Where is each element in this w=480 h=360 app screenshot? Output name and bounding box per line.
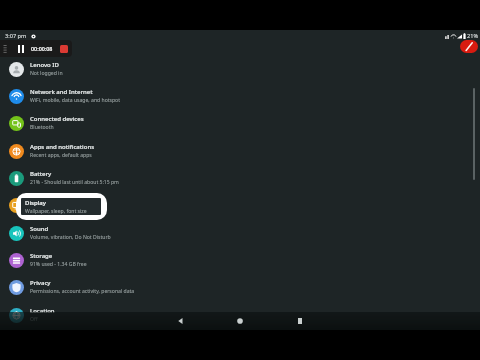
staticText: Display [30, 197, 51, 205]
staticText: Connected devices [30, 115, 84, 123]
button[interactable]: Back [150, 312, 210, 330]
staticText: 91% used - 1.34 GB free [30, 261, 87, 268]
staticText: WiFi, mobile, data usage, and hotspot [30, 97, 121, 104]
staticText: Bluetooth [30, 124, 54, 131]
staticText: Sound [30, 225, 49, 233]
staticText: Off [30, 316, 38, 323]
button[interactable]: Battery [0, 165, 480, 191]
button[interactable]: Display [0, 192, 480, 218]
button[interactable]: Pause recording [16, 44, 26, 54]
staticText: Recent apps, default apps [30, 152, 92, 159]
button[interactable]: Home [210, 312, 270, 330]
staticText: Wallpaper, sleep, font size [25, 208, 87, 215]
staticText: 3:07 pm [5, 32, 27, 40]
staticText: Location [30, 307, 55, 315]
button[interactable]: Privacy [0, 274, 480, 300]
button[interactable]: Network and Internet [0, 83, 480, 109]
staticText: Privacy [30, 279, 51, 287]
button[interactable]: Display [21, 198, 101, 215]
button[interactable]: Recent apps [270, 312, 330, 330]
staticText: Volume, vibration, Do Not Disturb [30, 234, 111, 241]
staticText: 21% - Should last until about 5:15 pm [30, 179, 119, 186]
button[interactable]: Sound [0, 220, 480, 246]
staticText: Not logged in [30, 70, 63, 77]
button[interactable]: Location [0, 302, 480, 328]
button[interactable]: Lenovo ID [0, 56, 480, 82]
staticText: Storage [30, 252, 53, 260]
staticText: 00:00:08 [31, 45, 53, 52]
button[interactable]: Microphone off [460, 40, 478, 53]
staticText: Apps and notifications [30, 143, 95, 151]
staticText: Permissions, account activity, personal … [30, 288, 135, 295]
button[interactable]: Stop recording [60, 45, 68, 53]
staticText: Network and Internet [30, 88, 93, 96]
staticText: 21% [467, 32, 479, 40]
staticText: Battery [30, 170, 52, 178]
button[interactable]: Apps and notifications [0, 138, 480, 164]
staticText: Wallpaper, sleep, font size [30, 206, 92, 213]
other: Drag handle [2, 44, 8, 54]
button[interactable]: Connected devices [0, 110, 480, 136]
button[interactable]: Storage [0, 247, 480, 273]
staticText: Display [25, 199, 46, 207]
staticText: Lenovo ID [30, 61, 59, 69]
